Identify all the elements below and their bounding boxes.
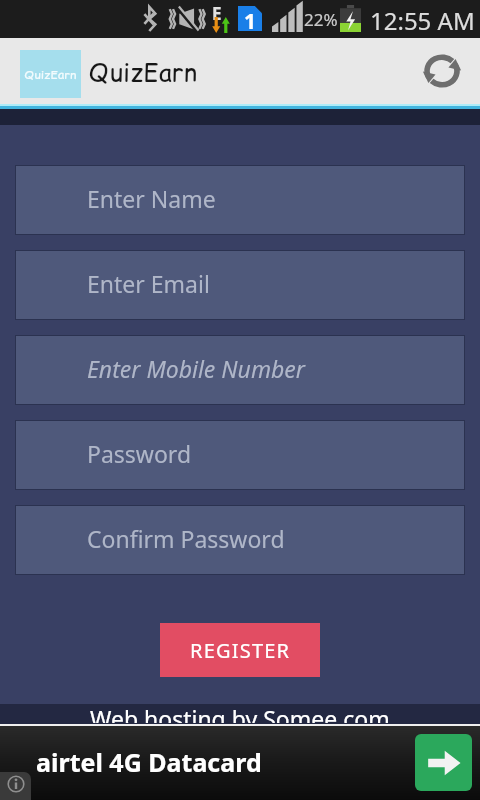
button[interactable]: Enter Email [15, 250, 465, 320]
button[interactable]: Enter Mobile Number [15, 335, 465, 405]
staticText: Enter Mobile Number [87, 353, 305, 384]
staticText: QuizEarn [88, 55, 197, 90]
staticText: REGISTER [190, 637, 291, 664]
staticText: Password [87, 438, 192, 469]
staticText: 22% [304, 8, 338, 31]
staticText: Enter Email [87, 268, 210, 299]
button[interactable]: Confirm Password [15, 505, 465, 575]
staticText: E [212, 2, 222, 25]
button[interactable]: Password [15, 420, 465, 490]
button[interactable]: Enter Name [15, 165, 465, 235]
staticText: 12:55 AM [370, 4, 475, 37]
staticText: Enter Name [87, 183, 216, 214]
staticText: QuizEarn [24, 66, 77, 83]
staticText: Web hosting by Somee.com [90, 704, 390, 723]
staticText: Confirm Password [87, 523, 285, 554]
button[interactable]: Refresh [418, 47, 466, 95]
button[interactable]: Ad choices [0, 772, 31, 800]
button[interactable]: REGISTER [160, 623, 320, 677]
staticText: 1 [244, 7, 257, 36]
staticText: airtel 4G Datacard [36, 745, 262, 779]
button[interactable]: Open ad [415, 734, 472, 791]
